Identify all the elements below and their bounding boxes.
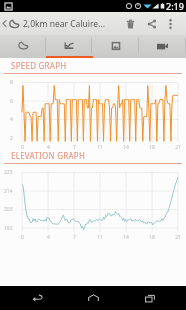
staticText: 14: [123, 144, 129, 151]
staticText: 11: [97, 234, 103, 241]
staticText: 6: [10, 98, 13, 105]
button[interactable]: Graph tab: [46, 35, 92, 56]
staticText: 0: [21, 234, 24, 241]
staticText: 7: [73, 234, 76, 241]
staticText: 225: [4, 169, 13, 176]
staticText: 214: [4, 188, 13, 195]
staticText: 18: [149, 144, 155, 151]
staticText: 2,0km near Caluire...: [23, 18, 120, 30]
button[interactable]: Route tab: [0, 35, 46, 56]
button[interactable]: Recents: [130, 286, 170, 310]
staticText: 0: [21, 144, 24, 151]
staticText: 21: [175, 144, 181, 151]
button[interactable]: Navigate up: [0, 12, 23, 35]
staticText: 11: [97, 144, 103, 151]
button[interactable]: Photos tab: [92, 35, 139, 56]
button[interactable]: Share: [141, 12, 162, 35]
staticText: 2: [10, 135, 13, 142]
staticText: 18: [149, 234, 155, 241]
staticText: 4: [47, 144, 50, 151]
staticText: 192: [4, 225, 13, 232]
staticText: 4: [10, 116, 13, 123]
staticText: 8: [10, 79, 13, 86]
button[interactable]: Home: [73, 286, 113, 310]
button[interactable]: Video tab: [139, 35, 186, 56]
button[interactable]: More options: [162, 12, 178, 35]
staticText: SPEED GRAPH: [11, 60, 67, 71]
staticText: ELEVATION GRAPH: [11, 150, 86, 161]
staticText: 4: [47, 234, 50, 241]
staticText: 14: [123, 234, 129, 241]
staticText: 7: [73, 144, 76, 151]
staticText: 2:19: [166, 0, 184, 12]
button[interactable]: Back: [17, 286, 57, 310]
staticText: 21: [175, 234, 181, 241]
staticText: 203: [4, 206, 13, 213]
button[interactable]: Delete: [120, 12, 141, 35]
